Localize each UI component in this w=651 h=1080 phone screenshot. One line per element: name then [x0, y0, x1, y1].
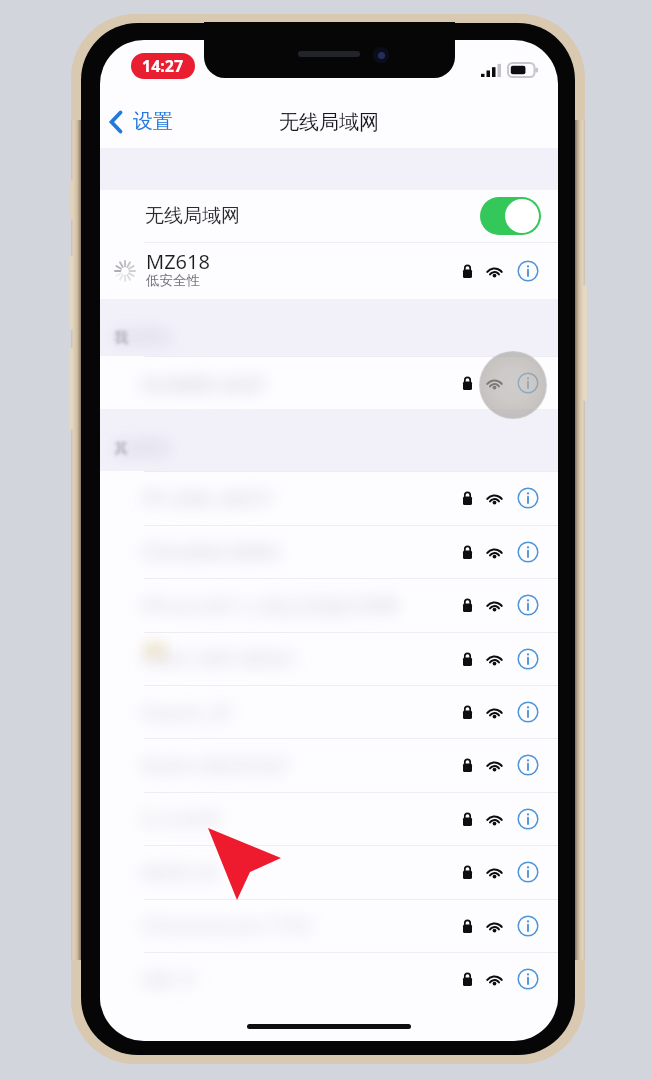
- button[interactable]: 无线局域网: [100, 190, 558, 242]
- staticText: 低安全性: [146, 272, 200, 289]
- staticText: 其他网络: [114, 440, 170, 458]
- staticText: 14:27: [142, 55, 184, 77]
- staticText: CMCC-WiFi-80521: [141, 646, 298, 672]
- button[interactable]: More info: [517, 861, 539, 883]
- button[interactable]: 设置: [102, 101, 181, 142]
- staticText: 无线局域网: [279, 110, 379, 135]
- button[interactable]: More info: [517, 372, 539, 394]
- staticText: D-Link99: [141, 806, 220, 832]
- button[interactable]: Wi-Fi toggle: [480, 197, 541, 235]
- button[interactable]: More info: [517, 648, 539, 670]
- staticText: 无线局域网: [145, 204, 240, 228]
- button[interactable]: More info: [100, 952, 558, 1006]
- button[interactable]: More info: [100, 471, 558, 525]
- button[interactable]: More info: [100, 738, 558, 792]
- button[interactable]: More info: [100, 578, 558, 632]
- button[interactable]: More info: [517, 754, 539, 776]
- staticText: 我: [114, 329, 128, 347]
- button[interactable]: More info: [517, 487, 539, 509]
- button[interactable]: More info: [517, 260, 539, 282]
- staticText: 设置: [133, 109, 173, 134]
- button[interactable]: More info: [100, 525, 558, 578]
- button[interactable]: More info: [100, 685, 558, 738]
- button[interactable]: More info: [100, 632, 558, 685]
- button[interactable]: More info: [100, 792, 558, 845]
- button[interactable]: More info: [517, 594, 539, 616]
- button[interactable]: More info: [517, 701, 539, 723]
- button[interactable]: More info: [517, 541, 539, 563]
- staticText: MZ618: [146, 248, 210, 275]
- button[interactable]: More info: [100, 899, 558, 952]
- button[interactable]: More info: [517, 968, 539, 990]
- staticText: 其: [114, 440, 128, 458]
- staticText: 我的网络: [114, 329, 170, 347]
- button[interactable]: MZ618: [100, 242, 558, 299]
- button[interactable]: More info: [100, 356, 558, 409]
- button[interactable]: More info: [517, 808, 539, 830]
- button[interactable]: More info: [100, 845, 558, 899]
- button[interactable]: More info: [517, 915, 539, 937]
